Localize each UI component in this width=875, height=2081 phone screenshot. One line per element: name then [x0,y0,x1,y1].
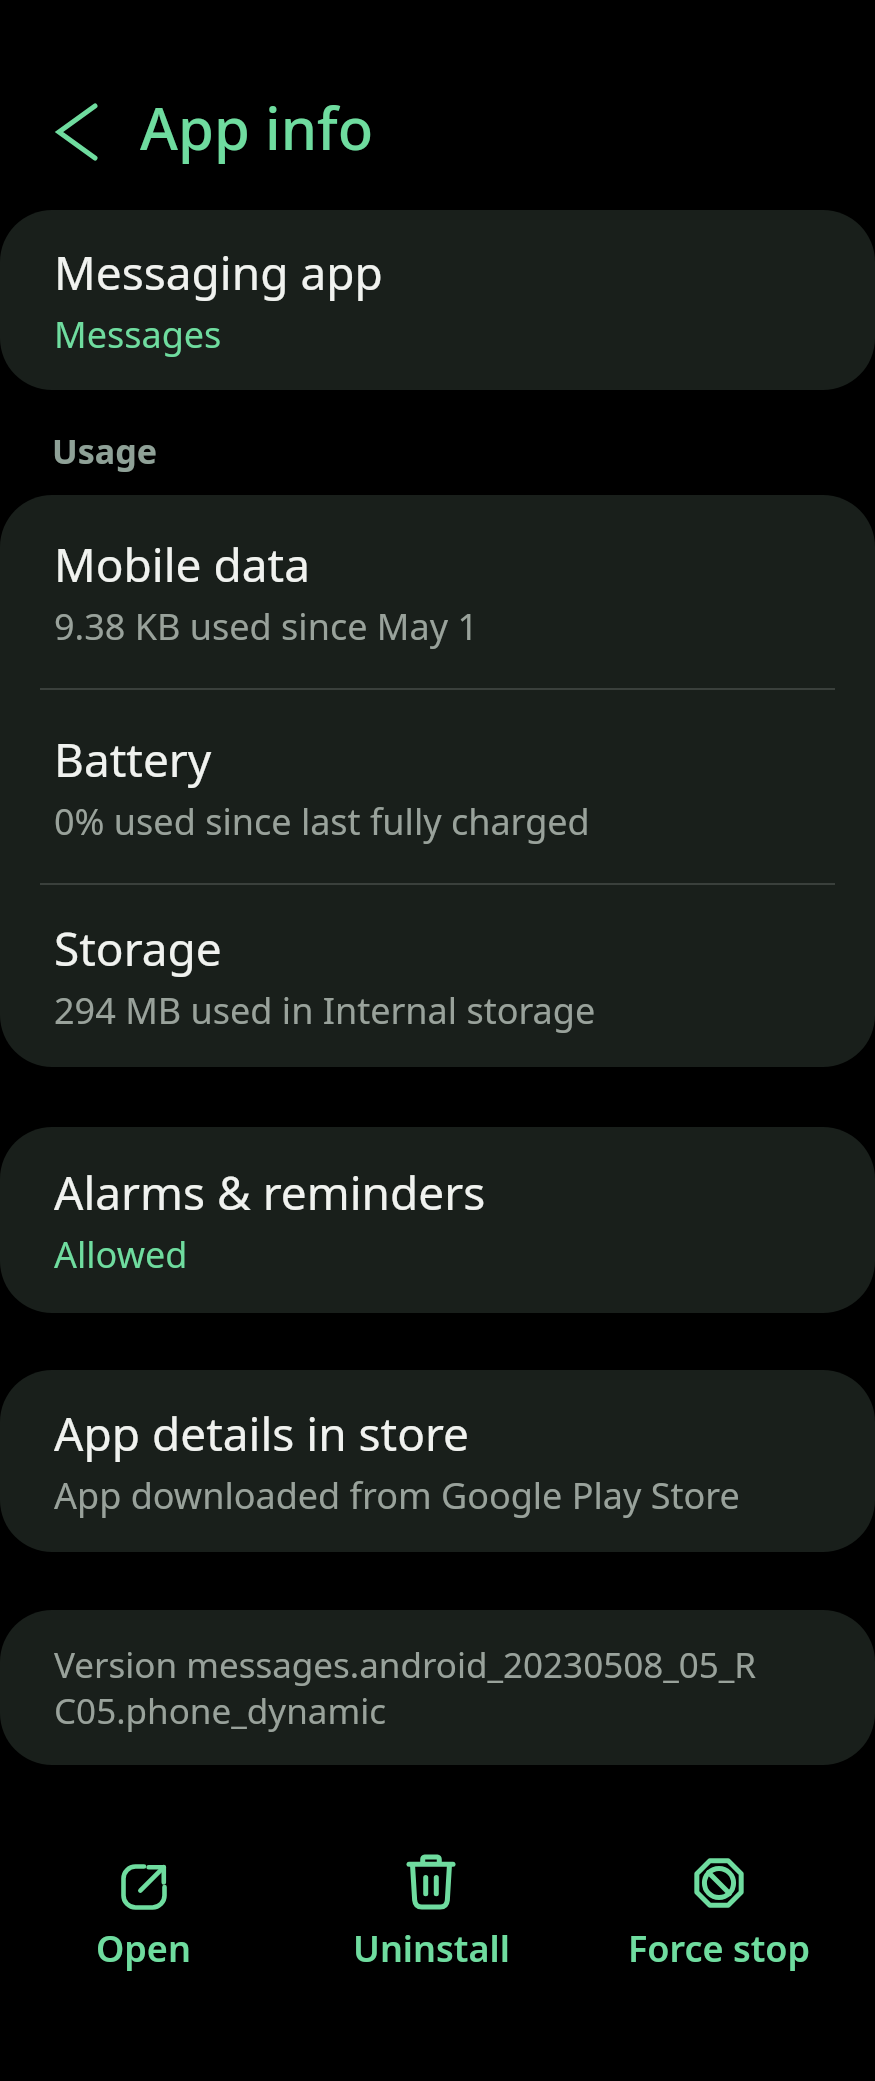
staticText: 0% used since last fully charged [54,797,590,846]
staticText: Alarms & reminders [54,1161,486,1224]
staticText: Battery [54,728,212,791]
staticText: 294 MB used in Internal storage [54,986,596,1035]
staticText: 9.38 KB used since May 1 [54,602,479,651]
staticText: Open [96,1924,191,1973]
staticText: Messages [54,310,222,359]
button[interactable]: Open [0,1864,287,1973]
staticText: Storage [54,917,222,980]
staticText: Mobile data [54,533,310,596]
staticText: App downloaded from Google Play Store [54,1471,740,1520]
staticText: App details in store [54,1402,470,1465]
button[interactable]: Uninstall [287,1856,575,1973]
button[interactable]: Force stop [575,1856,863,1973]
button[interactable]: Mobile data [0,495,875,1067]
staticText: Force stop [628,1924,811,1973]
staticText: Messaging app [54,241,383,304]
button[interactable] [40,95,104,159]
button[interactable]: Alarms & reminders [0,1127,875,1313]
button[interactable]: Messaging app [0,210,875,390]
staticText: App info [140,88,374,166]
button[interactable]: Version messages.android_20230508_05_R C… [0,1610,875,1765]
staticText: Usage [52,428,157,474]
button[interactable]: App details in store [0,1370,875,1552]
staticText: Allowed [54,1230,188,1279]
staticText: Version messages.android_20230508_05_R C… [54,1641,757,1734]
staticText: Uninstall [353,1924,510,1973]
